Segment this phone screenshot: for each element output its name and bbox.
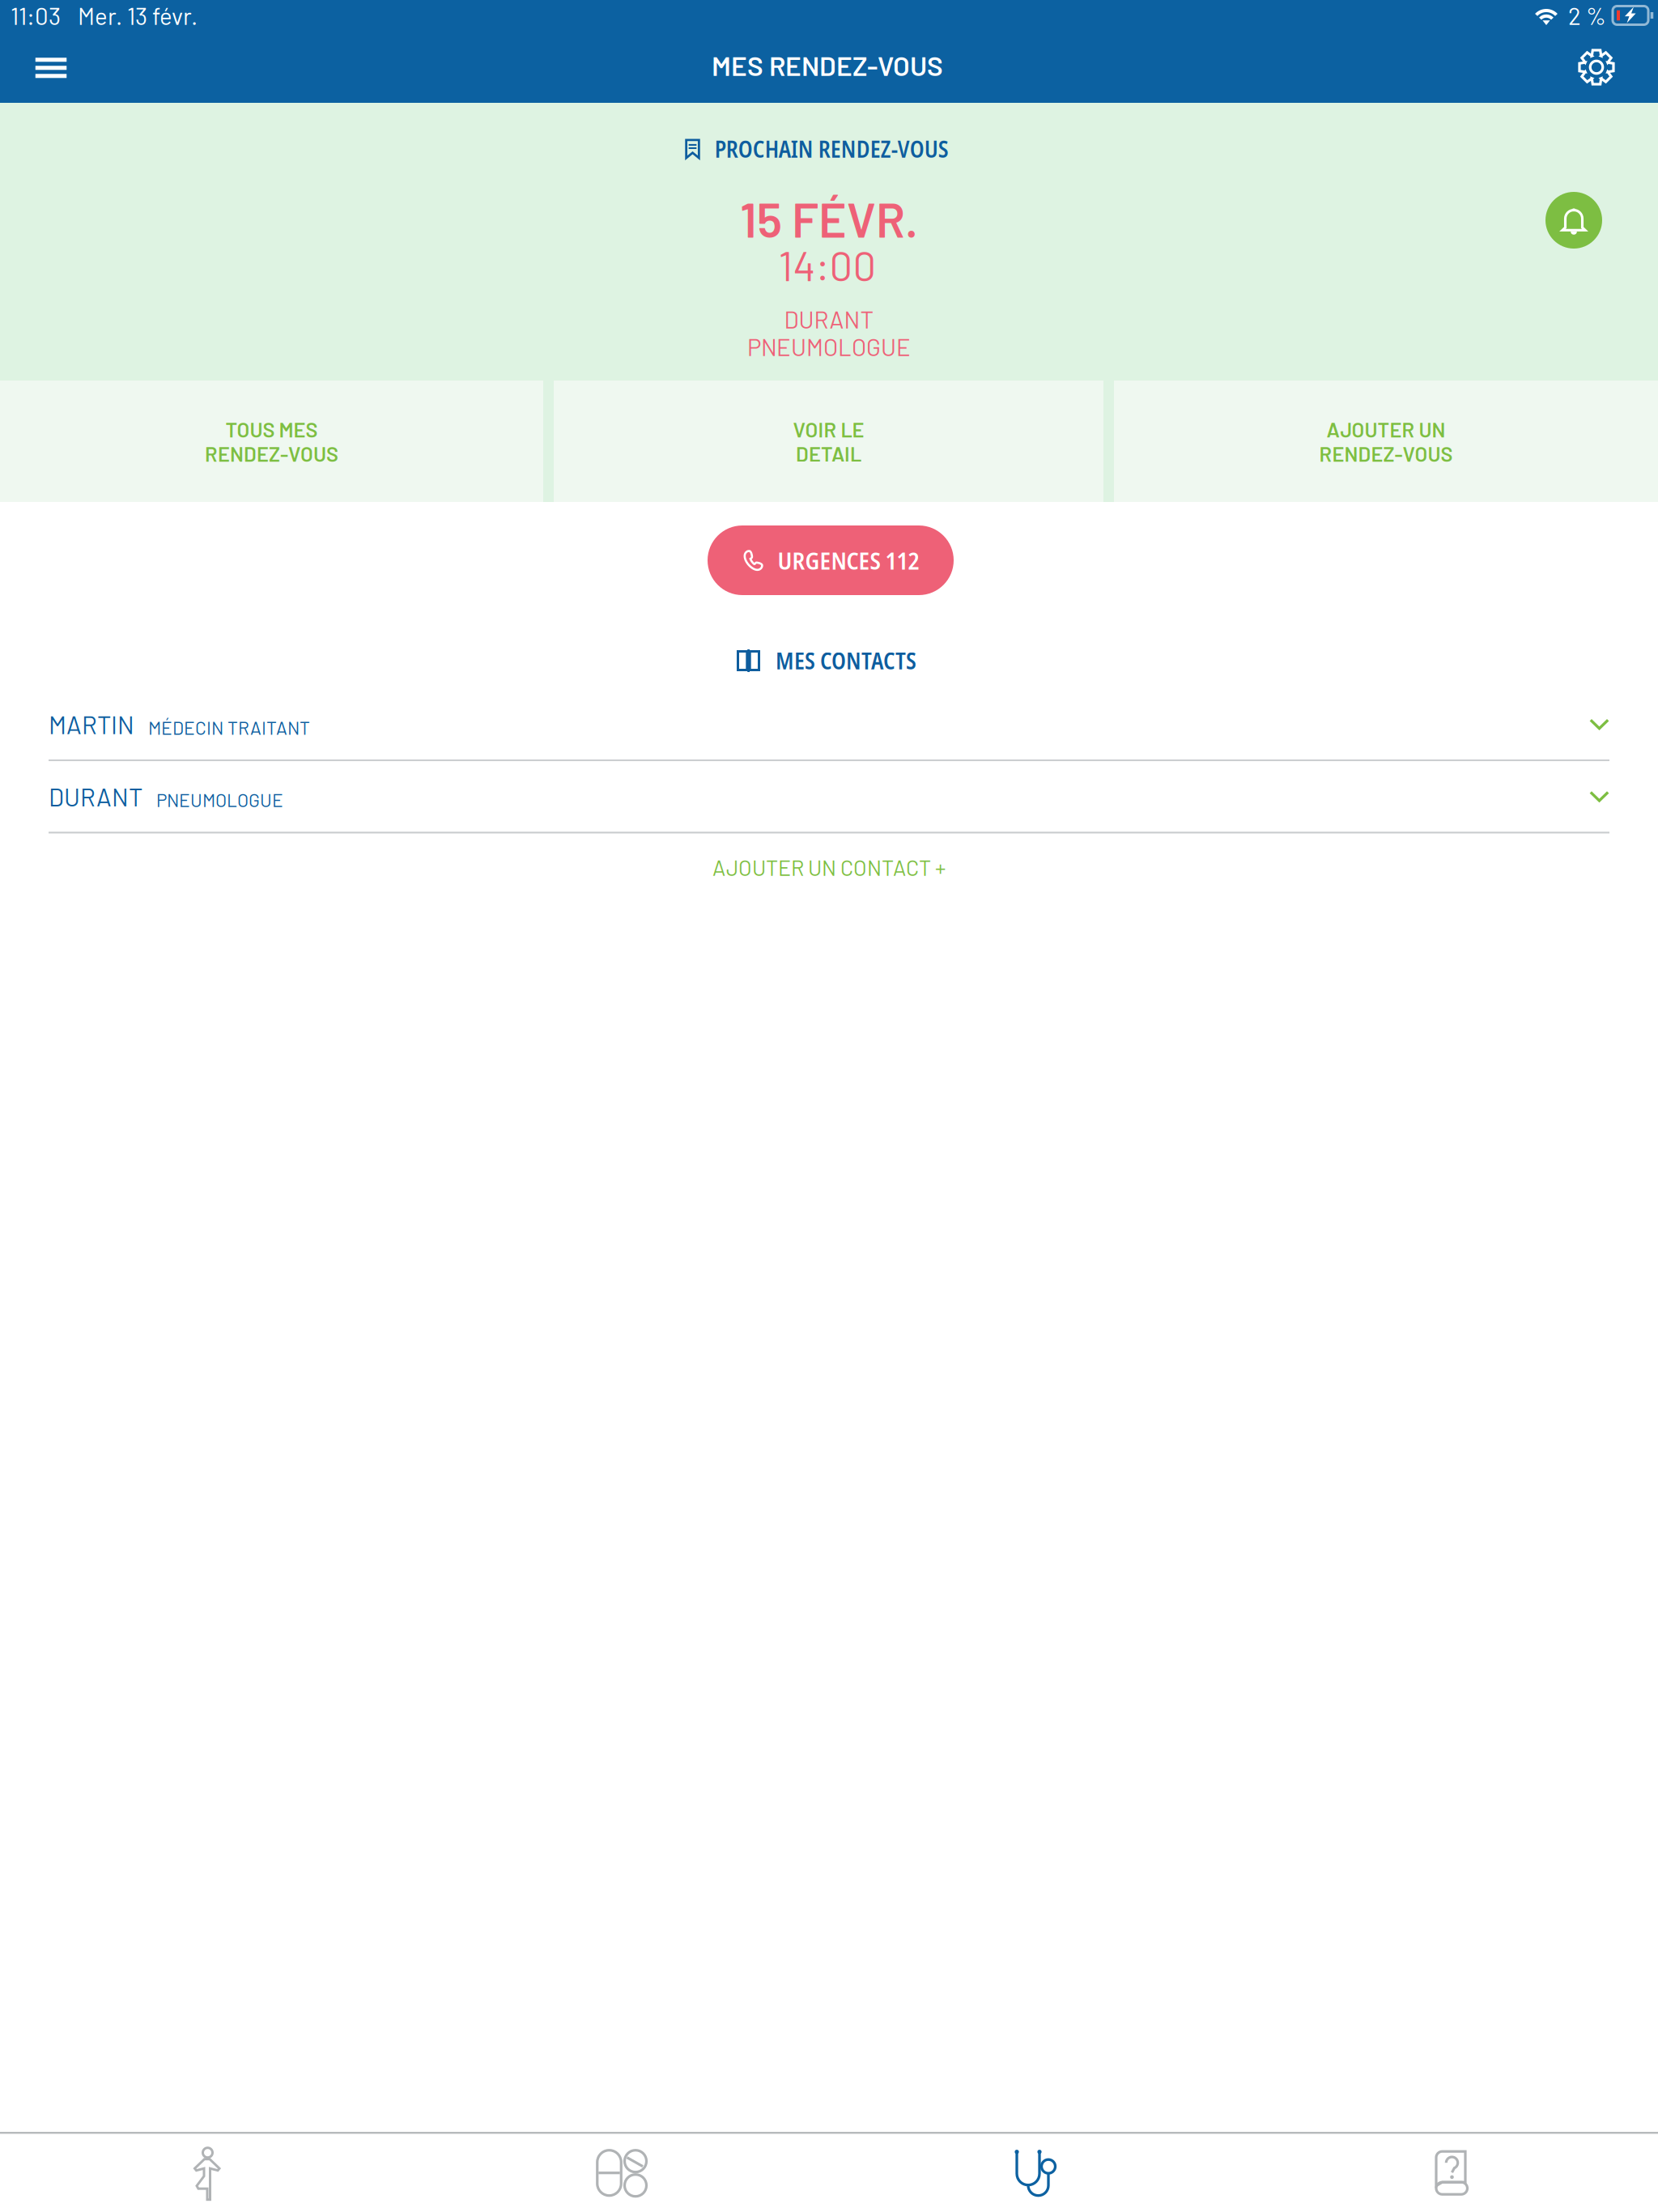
button[interactable]: Aide (1243, 2134, 1658, 2212)
button[interactable]: DURANT (0, 761, 1658, 832)
staticText: 2 % (1568, 1, 1606, 30)
staticText: PNEUMOLOGUE (747, 332, 911, 361)
staticText: Mer. 13 févr. (78, 1, 198, 30)
staticText: TOUS MES (225, 417, 318, 441)
button[interactable]: URGENCES 112 (708, 525, 954, 595)
staticText: AJOUTER UN (1326, 417, 1445, 441)
button[interactable]: TOUS MES (0, 381, 543, 502)
button[interactable]: Réglages (1556, 36, 1637, 98)
staticText: 11:03 (11, 1, 61, 30)
staticText: DURANT (784, 305, 874, 333)
staticText: DETAIL (796, 441, 861, 466)
staticText: MES CONTACTS (776, 645, 916, 676)
staticText: RENDEZ-VOUS (1319, 441, 1453, 466)
button[interactable]: AJOUTER UN (1114, 381, 1658, 502)
staticText: MÉDECIN TRAITANT (148, 716, 310, 738)
staticText: URGENCES 112 (778, 544, 919, 576)
button[interactable]: Activer le rappel (1545, 192, 1602, 249)
button[interactable]: VOIR LE (554, 381, 1103, 502)
staticText: AJOUTER UN CONTACT + (712, 854, 946, 880)
staticText: MES RENDEZ-VOUS (712, 49, 943, 81)
staticText: DURANT (49, 782, 142, 811)
button[interactable]: AJOUTER UN CONTACT + (688, 840, 970, 895)
button[interactable]: Mes traitements (414, 2134, 829, 2212)
staticText: PNEUMOLOGUE (156, 789, 283, 811)
button[interactable]: MARTIN (0, 689, 1658, 759)
button[interactable]: Mes rendez-vous (829, 2134, 1243, 2212)
button[interactable]: Mon profil (0, 2134, 414, 2212)
staticText: MARTIN (49, 709, 134, 739)
staticText: 14:00 (778, 240, 876, 289)
staticText: RENDEZ-VOUS (205, 441, 338, 466)
staticText: PROCHAIN RENDEZ-VOUS (715, 134, 949, 164)
staticText: 15 FÉVR. (740, 190, 918, 247)
button[interactable]: Menu (11, 37, 91, 99)
staticText: VOIR LE (793, 417, 864, 441)
